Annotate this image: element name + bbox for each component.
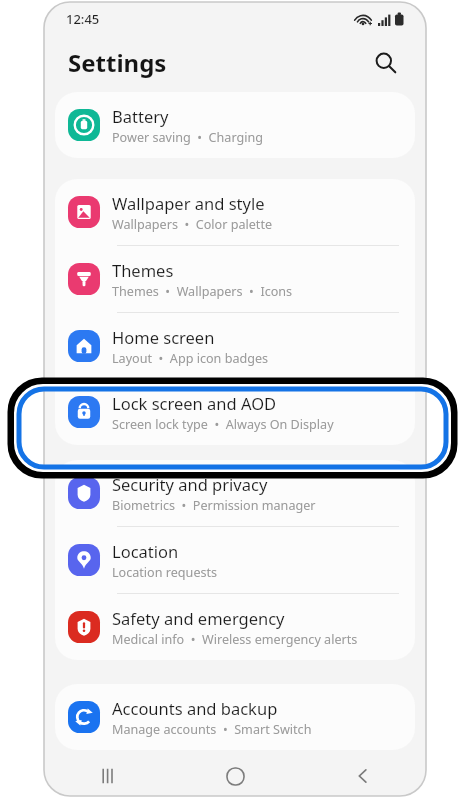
staticText: Screen lock type • Always On Display bbox=[112, 416, 334, 433]
button[interactable]: Themes bbox=[55, 246, 415, 312]
staticText: Security and privacy bbox=[112, 473, 268, 495]
other: Lock screen and AOD highlighted bbox=[8, 378, 463, 480]
button[interactable]: Back bbox=[299, 756, 426, 796]
staticText: Home screen bbox=[112, 326, 215, 348]
staticText: Battery bbox=[112, 105, 169, 127]
button[interactable]: Search bbox=[368, 45, 402, 79]
staticText: 12:45 bbox=[66, 10, 100, 28]
button[interactable]: Location bbox=[55, 527, 415, 593]
button[interactable]: Battery bbox=[55, 92, 415, 158]
staticText: Biometrics • Permission manager bbox=[112, 497, 316, 514]
staticText: Manage accounts • Smart Switch bbox=[112, 721, 312, 738]
staticText: Accounts and backup bbox=[112, 697, 278, 719]
staticText: Lock screen and AOD bbox=[112, 392, 277, 414]
button[interactable]: Home bbox=[172, 756, 299, 796]
staticText: Wallpaper and style bbox=[112, 192, 265, 214]
staticText: Layout • App icon badges bbox=[112, 350, 269, 367]
staticText: Safety and emergency bbox=[112, 607, 285, 629]
button[interactable]: Recents bbox=[44, 756, 172, 796]
staticText: Location requests bbox=[112, 564, 218, 581]
staticText: Themes • Wallpapers • Icons bbox=[112, 283, 293, 300]
button[interactable]: Lock screen and AOD bbox=[55, 379, 415, 445]
button[interactable]: Home screen bbox=[55, 313, 415, 379]
button[interactable]: Safety and emergency bbox=[55, 594, 415, 660]
staticText: Wallpapers • Color palette bbox=[112, 216, 273, 233]
staticText: Settings bbox=[68, 46, 167, 79]
staticText: Power saving • Charging bbox=[112, 129, 263, 146]
staticText: Location bbox=[112, 540, 179, 562]
button[interactable]: Wallpaper and style bbox=[55, 179, 415, 245]
staticText: Themes bbox=[112, 259, 174, 281]
staticText: Medical info • Wireless emergency alerts bbox=[112, 631, 358, 648]
button[interactable]: Security and privacy bbox=[55, 460, 415, 526]
button[interactable]: Accounts and backup bbox=[55, 684, 415, 750]
